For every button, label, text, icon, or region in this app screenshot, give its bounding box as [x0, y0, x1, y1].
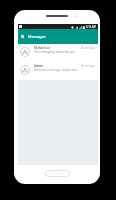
button[interactable]: Michael Lee [18, 44, 98, 62]
staticText: Admin [34, 64, 43, 68]
staticText: 20 min ago [81, 46, 95, 50]
staticText: Hi I'm designing with what you have in t… [34, 50, 81, 54]
staticText: 30 min ago [81, 64, 95, 68]
staticText: Welcome to the app, enjoy it here [34, 68, 79, 72]
staticText: Messages [28, 34, 46, 39]
staticText: Michael Lee [34, 46, 51, 50]
staticText: 5:13 AM [86, 25, 96, 29]
button[interactable]: Admin [18, 62, 98, 80]
button[interactable]: Open navigation menu [20, 34, 25, 39]
